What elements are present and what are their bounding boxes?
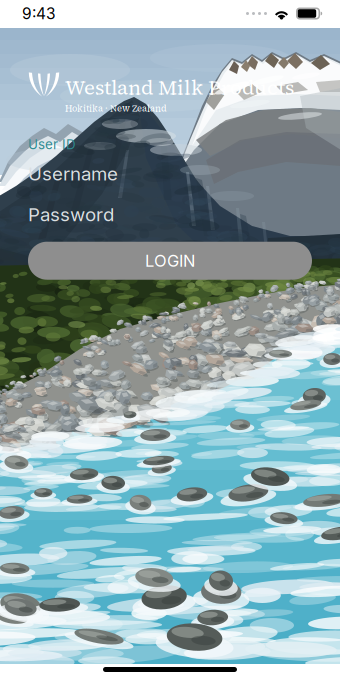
staticText: User ID xyxy=(28,136,76,152)
staticText: 9:43 xyxy=(22,4,56,23)
staticText: Hokitika · New Zealand xyxy=(65,102,167,114)
staticText: Password xyxy=(28,203,114,226)
button[interactable]: LOGIN xyxy=(28,242,312,280)
staticText: Westland Milk Products xyxy=(65,73,294,101)
staticText: LOGIN xyxy=(145,251,195,271)
staticText: Username xyxy=(28,162,118,185)
